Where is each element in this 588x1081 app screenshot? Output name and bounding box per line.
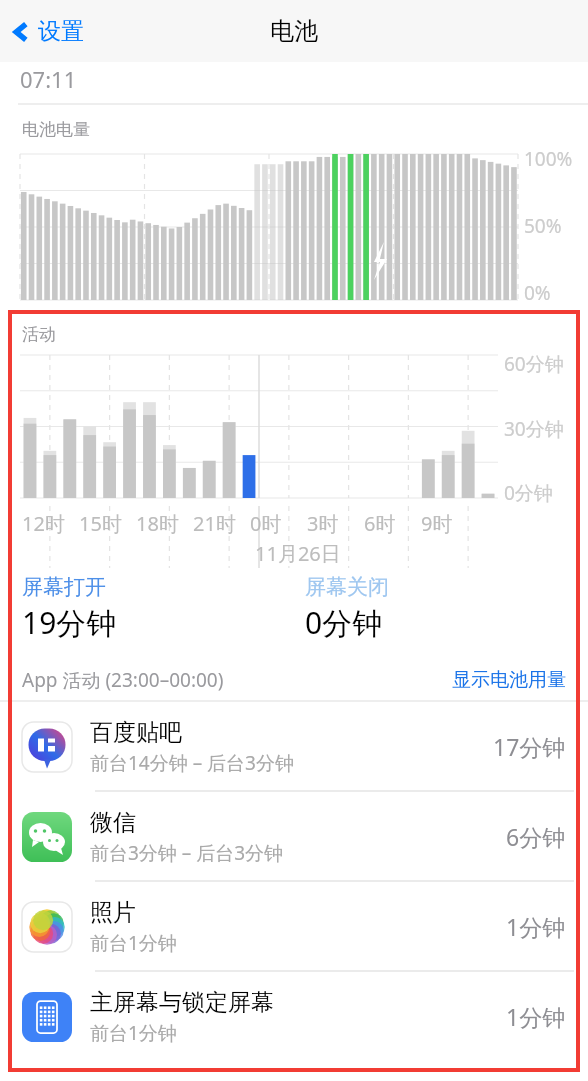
staticText: 1分钟 [506, 911, 566, 942]
staticText: 12时 [22, 510, 65, 537]
button[interactable]: 照片 [0, 882, 588, 971]
staticText: 6时 [364, 510, 396, 537]
staticText: 30分钟 [504, 416, 564, 442]
staticText: 1分钟 [506, 1001, 566, 1032]
staticText: 0时 [250, 510, 282, 537]
staticText: 前台14分钟 – 后台3分钟 [90, 750, 294, 776]
staticText: App 活动 (23:00–00:00) [22, 667, 452, 693]
staticText: 屏幕关闭 [305, 574, 389, 600]
staticText: 0% [524, 280, 551, 306]
staticText: 百度贴吧 [90, 718, 182, 747]
other: Back [10, 18, 32, 46]
staticText: 设置 [38, 17, 84, 46]
staticText: 0分钟 [305, 602, 383, 643]
staticText: 照片 [90, 898, 136, 927]
staticText: 100% [524, 146, 573, 172]
staticText: 微信 [90, 808, 136, 837]
staticText: 0分钟 [504, 480, 553, 506]
staticText: 6分钟 [506, 821, 566, 852]
staticText: 屏幕打开 [22, 574, 106, 600]
staticText: 60分钟 [504, 351, 564, 377]
button[interactable]: 主屏幕与锁定屏幕 [0, 972, 588, 1061]
staticText: 电池 [270, 16, 318, 46]
staticText: 11月26日 [255, 540, 341, 567]
staticText: 50% [524, 213, 562, 239]
button[interactable]: 百度贴吧 [0, 702, 588, 791]
staticText: 07:11 [20, 64, 77, 94]
staticText: 前台3分钟 – 后台3分钟 [90, 840, 284, 866]
staticText: 17分钟 [493, 731, 566, 762]
staticText: 15时 [79, 510, 122, 537]
staticText: 前台1分钟 [90, 930, 177, 956]
staticText: 活动 [22, 324, 56, 345]
button[interactable]: 微信 [0, 792, 588, 881]
staticText: 3时 [307, 510, 339, 537]
staticText: 9时 [421, 510, 453, 537]
staticText: 19分钟 [22, 602, 117, 643]
staticText: 电池电量 [22, 119, 90, 140]
staticText: 21时 [193, 510, 236, 537]
button[interactable]: 显示电池用量 [452, 668, 566, 692]
staticText: 18时 [136, 510, 179, 537]
staticText: 前台1分钟 [90, 1020, 177, 1046]
staticText: 显示电池用量 [452, 668, 566, 692]
staticText: 主屏幕与锁定屏幕 [90, 988, 274, 1017]
button[interactable]: Back [10, 17, 84, 46]
